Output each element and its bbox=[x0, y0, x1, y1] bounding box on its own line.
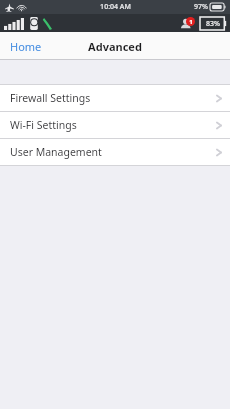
staticText: 10:04 AM bbox=[100, 2, 131, 12]
button[interactable]: Wi-Fi Settings bbox=[0, 112, 230, 138]
button[interactable]: Home bbox=[0, 32, 52, 60]
button[interactable]: User Management bbox=[0, 139, 230, 165]
staticText: User Management bbox=[10, 145, 216, 159]
staticText: 83% bbox=[206, 19, 220, 29]
staticText: Firewall Settings bbox=[10, 91, 216, 105]
staticText: Wi-Fi Settings bbox=[10, 118, 216, 132]
staticText: Home bbox=[10, 39, 42, 54]
staticText: 1 bbox=[189, 18, 193, 26]
staticText: 97% bbox=[194, 2, 208, 12]
button[interactable]: Firewall Settings bbox=[0, 85, 230, 111]
staticText: Advanced bbox=[88, 39, 142, 54]
